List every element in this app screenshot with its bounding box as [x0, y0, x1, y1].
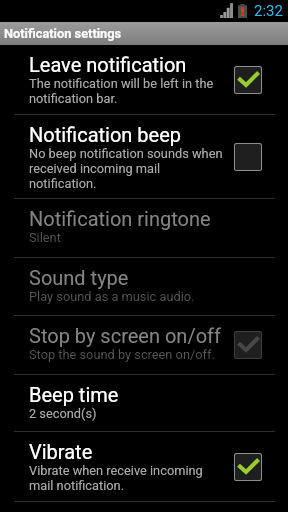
staticText: Notification settings	[4, 26, 122, 41]
button[interactable]: Sound type	[0, 258, 288, 315]
button[interactable]: Stop by screen on/off	[0, 316, 288, 374]
button[interactable]: Beep time	[0, 375, 288, 431]
staticText: Stop the sound by screen on/off.	[29, 347, 215, 362]
button[interactable]: Notification settings	[0, 22, 288, 45]
staticText: The notification will be left in the not…	[29, 76, 214, 106]
button[interactable]: Toggle	[234, 453, 262, 481]
button[interactable]: Notification beep	[0, 115, 288, 198]
button[interactable]: Vibrate	[0, 432, 288, 501]
button[interactable]: Notification ringtone	[0, 199, 288, 257]
button[interactable]: Toggle	[234, 143, 262, 171]
staticText: Play sound as a music audio.	[29, 289, 195, 304]
staticText: Beep time	[29, 383, 119, 406]
other: Battery low	[238, 4, 247, 18]
staticText: Vibrate when receive incoming mail notif…	[29, 463, 203, 493]
button[interactable]: Toggle	[234, 331, 262, 359]
staticText: 2:32	[254, 2, 283, 20]
staticText: Notification beep	[29, 123, 182, 146]
staticText: 2 second(s)	[29, 406, 97, 421]
staticText: Silent	[29, 230, 61, 245]
button[interactable]: Leave notification	[0, 45, 288, 114]
staticText: Sound type	[29, 266, 129, 289]
staticText: Notification ringtone	[29, 207, 211, 230]
staticText: No beep notification sounds when receive…	[29, 146, 223, 191]
other: Signal strength	[220, 3, 233, 18]
staticText: Vibrate	[29, 440, 93, 463]
staticText: Leave notification	[29, 53, 187, 76]
button[interactable]: Toggle	[234, 66, 262, 94]
staticText: Stop by screen on/off	[29, 324, 221, 347]
